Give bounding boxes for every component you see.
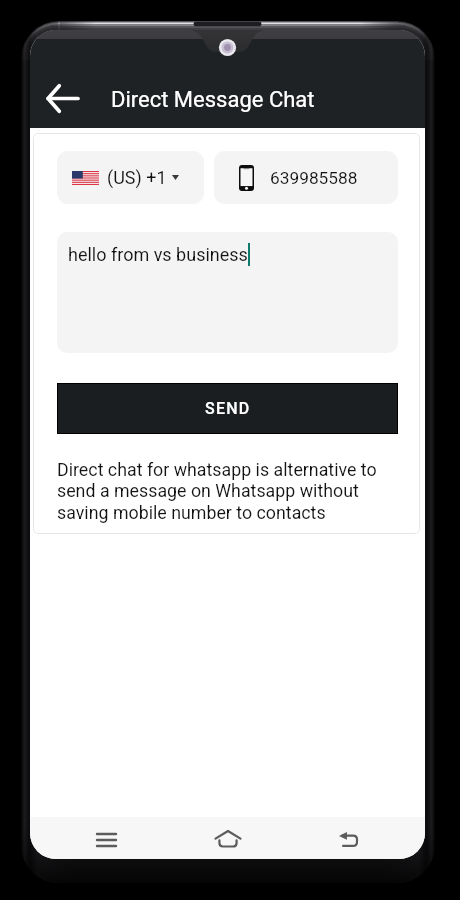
button[interactable]: Back xyxy=(38,74,86,122)
staticText: (US) +1 xyxy=(107,167,167,188)
staticText: hello from vs business xyxy=(68,244,248,265)
button[interactable]: hello from vs business xyxy=(57,232,398,353)
staticText: 639985588 xyxy=(270,168,358,188)
button[interactable]: Home xyxy=(199,817,256,859)
button[interactable]: SEND xyxy=(57,383,398,434)
button[interactable]: Recent apps xyxy=(78,817,135,859)
button[interactable]: 639985588 xyxy=(214,151,398,204)
staticText: Direct Message Chat xyxy=(111,87,315,113)
button[interactable]: (US) +1 xyxy=(57,151,204,204)
staticText: SEND xyxy=(205,399,251,418)
staticText: Direct chat for whatsapp is alternative … xyxy=(57,459,398,523)
button[interactable]: Back xyxy=(319,817,376,859)
